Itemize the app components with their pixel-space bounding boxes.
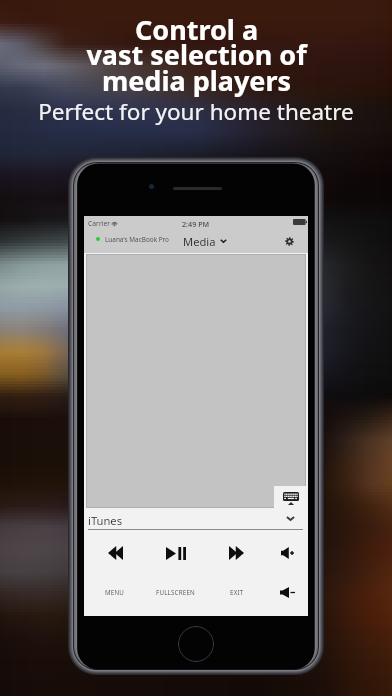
staticText: Perfect for your home theatre — [38, 96, 354, 127]
button[interactable]: Volume down — [267, 582, 308, 602]
button[interactable]: Rewind — [85, 541, 145, 565]
button[interactable]: Play or pause — [145, 541, 206, 565]
staticText: Media — [183, 234, 216, 249]
button[interactable]: Volume up — [267, 541, 308, 565]
staticText: Luana's MacBook Pro — [105, 235, 169, 244]
staticText: 2:49 PM — [182, 219, 210, 229]
staticText: Carrier — [88, 219, 111, 228]
button[interactable]: EXIT — [206, 582, 267, 602]
staticText: MENU — [105, 588, 125, 596]
button[interactable]: MENU — [85, 582, 145, 602]
button[interactable] — [84, 509, 308, 531]
button[interactable]: Media — [183, 233, 227, 249]
staticText: EXIT — [230, 588, 244, 596]
button[interactable]: Settings — [281, 233, 297, 249]
button[interactable]: FULLSCREEN — [145, 582, 206, 602]
staticText: FULLSCREEN — [156, 588, 195, 596]
staticText: Control a vast selection of media player… — [86, 11, 307, 99]
button[interactable]: Show keyboard — [274, 486, 308, 516]
staticText: iTunes — [88, 513, 123, 528]
button[interactable]: Home — [178, 626, 214, 662]
button[interactable]: Fast forward — [206, 541, 267, 565]
